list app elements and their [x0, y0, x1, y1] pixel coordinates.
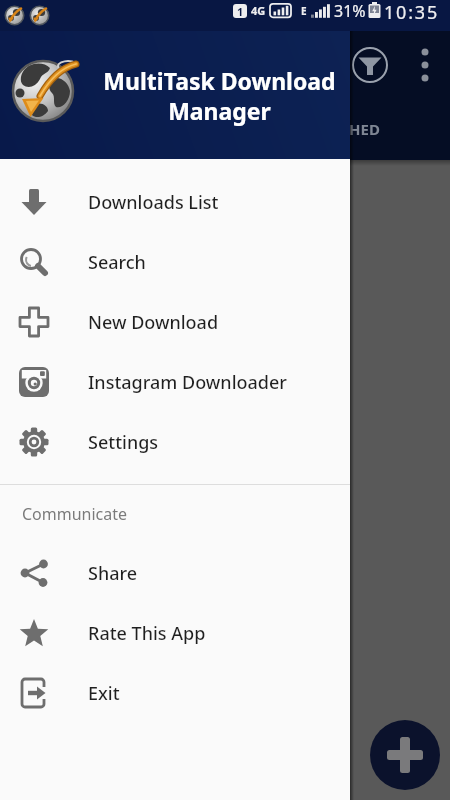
- button[interactable]: Downloads List: [0, 172, 350, 232]
- staticText: 10:35: [384, 0, 440, 25]
- staticText: Share: [88, 561, 138, 586]
- staticText: Search: [88, 250, 146, 275]
- button[interactable]: [352, 47, 388, 83]
- staticText: Exit: [88, 681, 120, 706]
- staticText: Communicate: [22, 503, 128, 525]
- button[interactable]: Exit: [0, 663, 350, 723]
- button[interactable]: [414, 45, 436, 85]
- staticText: New Download: [88, 310, 219, 335]
- staticText: Settings: [88, 430, 159, 455]
- staticText: HED: [349, 119, 380, 139]
- button[interactable]: New Download: [0, 292, 350, 352]
- staticText: MultiTask Download Manager: [103, 65, 336, 126]
- staticText: 4G: [251, 3, 266, 18]
- staticText: E: [301, 4, 307, 18]
- staticText: Instagram Downloader: [88, 370, 287, 395]
- staticText: Downloads List: [88, 190, 219, 215]
- button[interactable]: Instagram Downloader: [0, 352, 350, 412]
- staticText: 31%: [334, 0, 366, 22]
- button[interactable]: Share: [0, 543, 350, 603]
- button[interactable]: [370, 720, 440, 790]
- button[interactable]: Rate This App: [0, 603, 350, 663]
- staticText: 1: [237, 4, 244, 18]
- staticText: Rate This App: [88, 621, 206, 646]
- button[interactable]: Settings: [0, 412, 350, 472]
- button[interactable]: Search: [0, 232, 350, 292]
